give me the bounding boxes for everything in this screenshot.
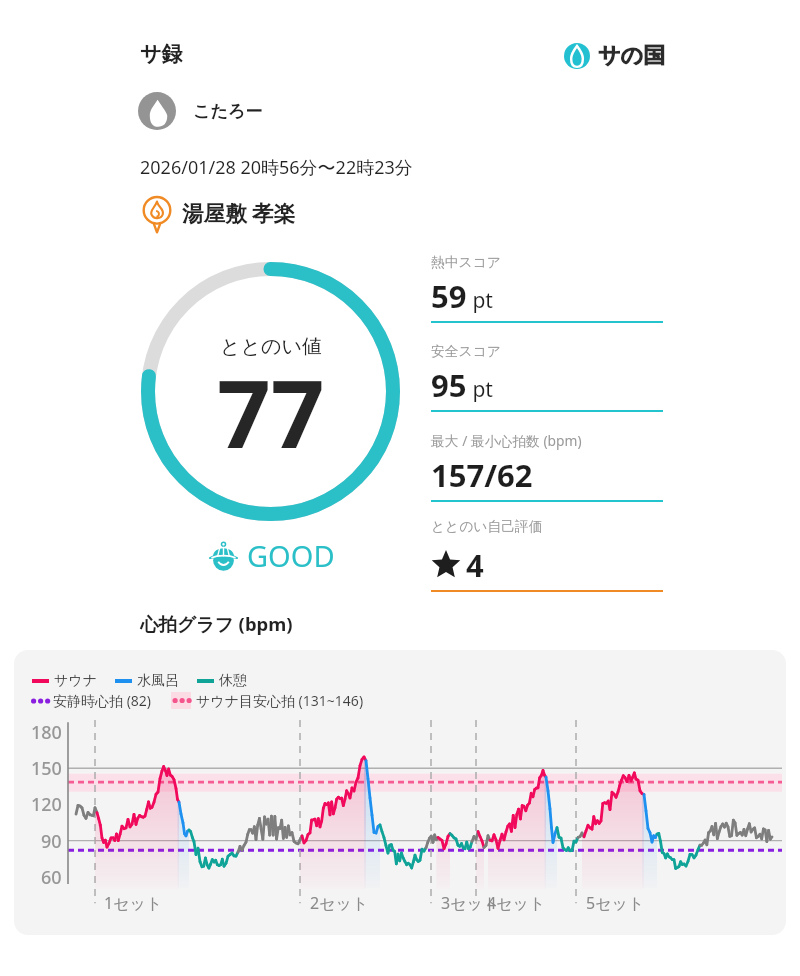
staticText: サ録 (140, 41, 183, 67)
button[interactable]: GOOD (208, 536, 335, 575)
button[interactable]: こたろー (138, 92, 263, 130)
button[interactable]: サの国 (564, 42, 666, 70)
staticText: 90 (41, 829, 62, 854)
button[interactable]: サ録 (140, 41, 183, 67)
staticText: pt (467, 375, 493, 404)
staticText: 59 (431, 275, 467, 317)
staticText: 2セット (310, 892, 369, 914)
staticText: 4セット (487, 892, 546, 914)
button[interactable]: 湯屋敷 孝楽 (140, 190, 296, 234)
staticText: pt (467, 286, 493, 315)
staticText: 95 (431, 364, 467, 406)
staticText: 安静時心拍 (82) (53, 691, 152, 710)
other: GOOD (208, 540, 239, 571)
staticText: 水風呂 (137, 672, 179, 690)
staticText: 120 (31, 792, 62, 817)
staticText: サウナ (54, 672, 97, 690)
button[interactable]: 熱中スコア (431, 254, 663, 343)
button[interactable]: ととのい自己評価 (431, 518, 663, 592)
button[interactable]: 安全スコア (431, 343, 663, 431)
staticText: 湯屋敷 孝楽 (182, 198, 296, 227)
staticText: 1セット (104, 892, 163, 914)
staticText: サウナ目安心拍 (131~146) (196, 691, 364, 710)
staticText: 5セット (586, 892, 645, 914)
staticText: こたろー (193, 101, 263, 122)
staticText: 休憩 (219, 672, 247, 690)
staticText: 3セット (441, 892, 500, 914)
staticText: 4 (466, 544, 484, 586)
staticText: 2026/01/28 20時56分〜22時23分 (140, 155, 413, 180)
staticText: サの国 (598, 42, 666, 70)
staticText: 熱中スコア (431, 254, 501, 271)
staticText: 安全スコア (431, 343, 501, 360)
staticText: 77 (217, 348, 325, 476)
staticText: 心拍グラフ (bpm) (140, 611, 293, 636)
button[interactable]: 最大 / 最小心拍数 (bpm) (431, 431, 663, 518)
staticText: 157/62 (431, 454, 533, 496)
staticText: 60 (41, 865, 62, 890)
staticText: 180 (31, 720, 62, 745)
staticText: ととのい値 (220, 334, 322, 359)
staticText: GOOD (247, 536, 335, 575)
staticText: ととのい自己評価 (431, 518, 543, 535)
staticText: 最大 / 最小心拍数 (bpm) (431, 431, 582, 450)
staticText: 150 (31, 756, 62, 781)
